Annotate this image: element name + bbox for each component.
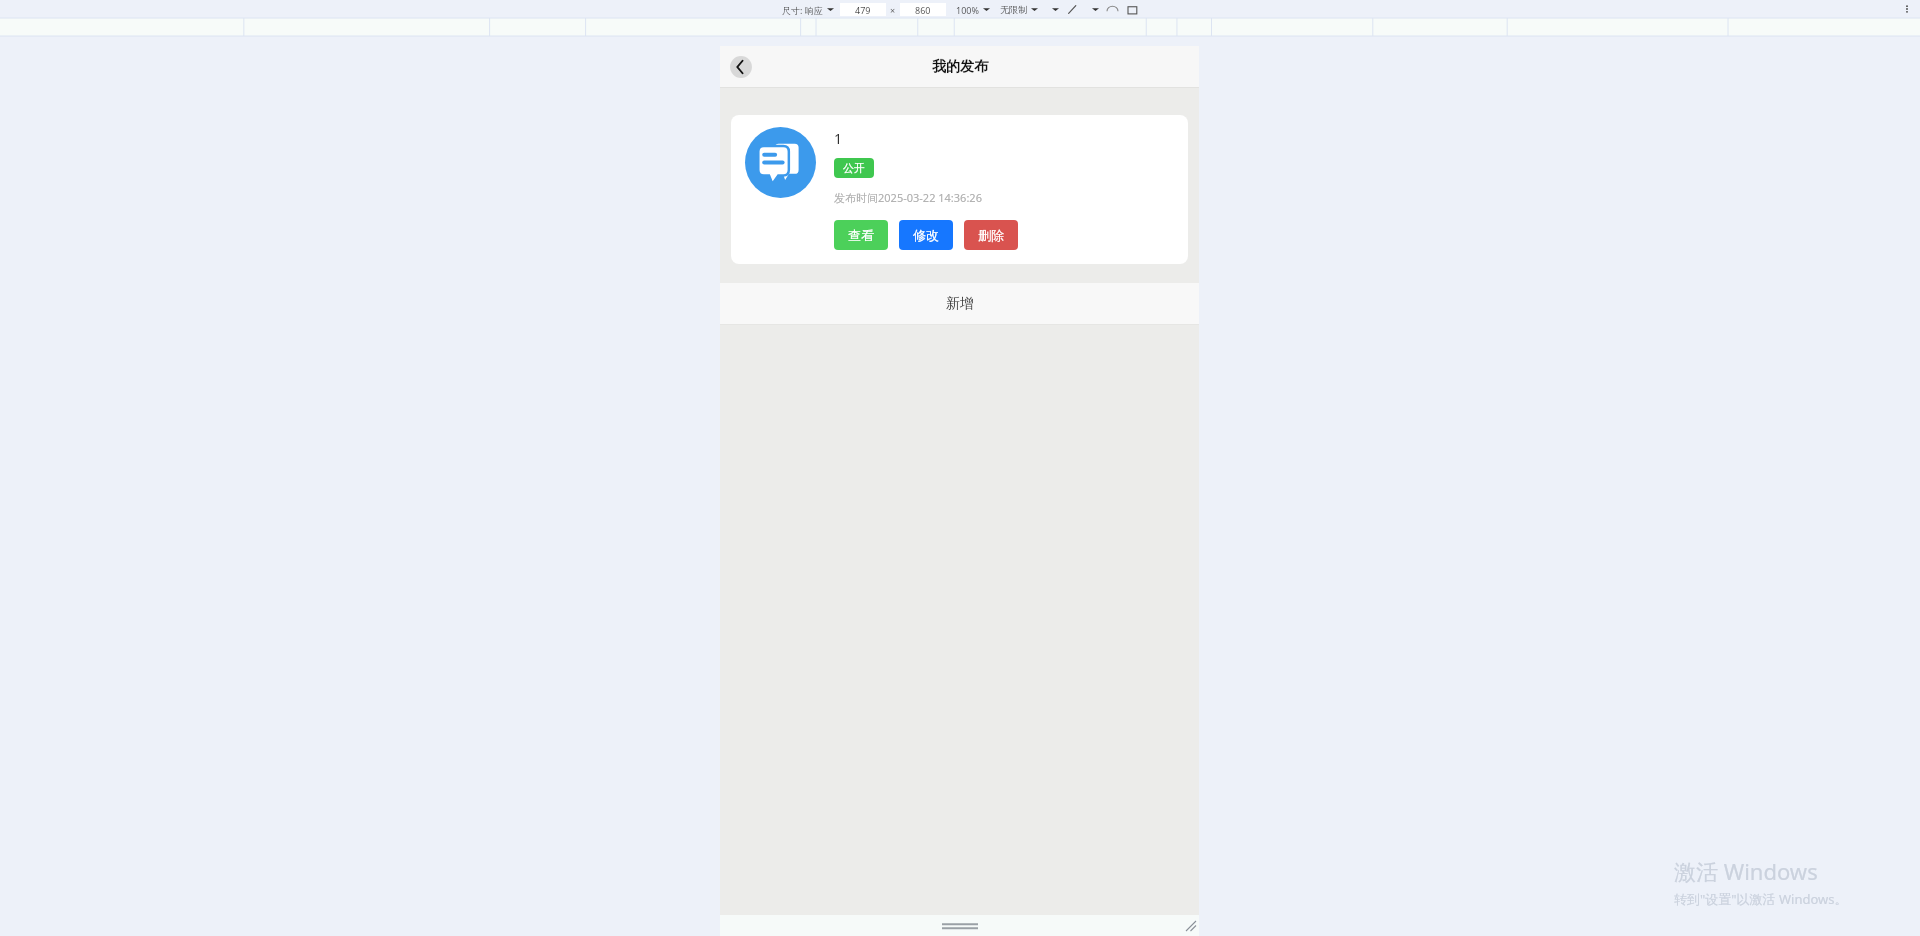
- button[interactable]: Preview: [1107, 4, 1118, 15]
- staticText: 479: [855, 4, 871, 16]
- staticText: 1: [834, 129, 843, 148]
- staticText: 860: [915, 4, 931, 16]
- button[interactable]: 479: [840, 3, 886, 16]
- button[interactable]: 新增: [720, 283, 1199, 324]
- button[interactable]: 删除: [964, 220, 1018, 250]
- button[interactable]: 860: [900, 3, 946, 16]
- button[interactable]: Back: [728, 54, 754, 80]
- staticText: 修改: [913, 227, 939, 243]
- staticText: 发布时间2025-03-22 14:36:26: [834, 190, 982, 205]
- button[interactable]: More options: [1901, 3, 1913, 15]
- button[interactable]: Inspect: [1067, 4, 1078, 15]
- button[interactable]: Cast: [1128, 4, 1139, 15]
- staticText: 新增: [946, 295, 974, 313]
- button[interactable]: 查看: [834, 220, 888, 250]
- staticText: 公开: [843, 161, 865, 175]
- staticText: 查看: [848, 227, 874, 243]
- button[interactable]: Resize: [1186, 921, 1196, 931]
- staticText: 删除: [978, 227, 1004, 243]
- button[interactable]: 公开: [834, 158, 874, 178]
- staticText: 100%: [956, 4, 979, 16]
- staticText: 转到"设置"以激活 Windows。: [1674, 890, 1848, 908]
- staticText: 激活 Windows: [1674, 856, 1818, 886]
- staticText: 我的发布: [932, 58, 988, 76]
- staticText: 尺寸: 响应: [782, 4, 823, 16]
- button[interactable]: 修改: [899, 220, 953, 250]
- staticText: ×: [890, 4, 896, 16]
- staticText: 无限制: [1000, 4, 1027, 15]
